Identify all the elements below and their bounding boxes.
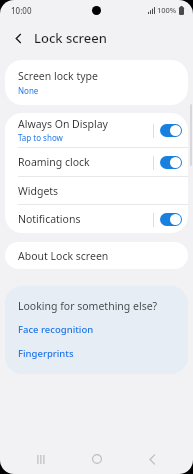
staticText: About Lock screen	[18, 249, 109, 263]
button[interactable]: Recents	[26, 444, 56, 474]
button[interactable]: Roaming clock	[5, 148, 153, 176]
staticText: Face recognition	[18, 323, 94, 336]
button[interactable]: Fingerprints	[18, 347, 175, 360]
staticText: None	[18, 85, 39, 96]
button[interactable]: Back	[6, 26, 30, 50]
staticText: Screen lock type	[18, 69, 98, 83]
button[interactable]: Notifications	[5, 205, 153, 233]
staticText: Tap to show	[18, 132, 63, 143]
staticText: 10:00	[11, 5, 32, 16]
staticText: Always On Display	[18, 117, 108, 131]
button[interactable]: Screen lock type	[5, 60, 188, 105]
staticText: Widgets	[18, 184, 59, 198]
button[interactable]: About Lock screen	[5, 242, 188, 269]
button[interactable]: Face recognition	[18, 323, 175, 336]
button[interactable]: Toggle	[154, 208, 188, 231]
staticText: 100%	[157, 5, 177, 15]
button[interactable]: Back	[137, 444, 167, 474]
button[interactable]: Toggle	[154, 151, 188, 174]
staticText: Notifications	[18, 212, 81, 226]
button[interactable]: Widgets	[5, 177, 188, 204]
staticText: Fingerprints	[18, 347, 74, 360]
button[interactable]: Always On Display	[5, 117, 153, 143]
staticText: Lock screen	[34, 29, 107, 47]
button[interactable]: Home	[82, 444, 112, 474]
button[interactable]: Toggle	[154, 119, 188, 142]
staticText: Looking for something else?	[18, 299, 158, 313]
staticText: Roaming clock	[18, 155, 90, 169]
